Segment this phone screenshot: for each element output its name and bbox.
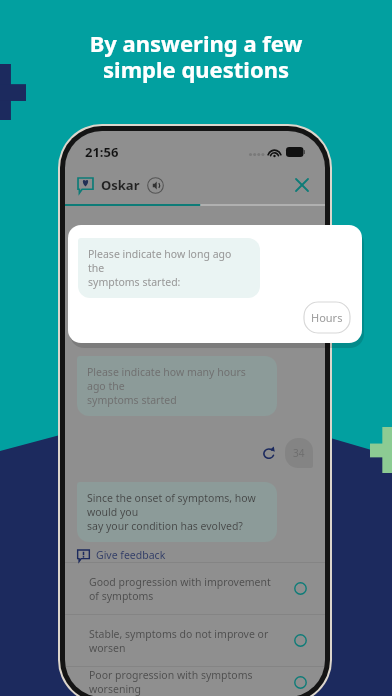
staticText: Since the onset of symptoms, how would y… bbox=[87, 491, 267, 533]
button[interactable]: Close bbox=[291, 174, 313, 196]
staticText: Give feedback bbox=[96, 548, 166, 562]
staticText: Oskar bbox=[101, 176, 140, 194]
button[interactable]: Give feedback bbox=[77, 548, 166, 562]
button[interactable]: Hours bbox=[303, 301, 351, 334]
staticText: 34 bbox=[293, 446, 305, 460]
staticText: Good progression with improvement of sym… bbox=[89, 575, 294, 603]
staticText: Hours bbox=[311, 310, 343, 325]
button[interactable]: Poor progression with symptoms worsening bbox=[65, 667, 325, 696]
button[interactable] bbox=[251, 228, 313, 258]
staticText: Poor progression with symptoms worsening bbox=[89, 668, 294, 696]
button[interactable]: Good progression with improvement of sym… bbox=[65, 563, 325, 614]
button[interactable]: 34 bbox=[285, 438, 313, 468]
staticText: Please indicate how long ago the symptom… bbox=[88, 247, 250, 289]
button[interactable]: Edit answer bbox=[261, 445, 277, 461]
button[interactable]: Oskar assistant bbox=[77, 177, 94, 194]
button[interactable]: Toggle sound bbox=[147, 177, 164, 194]
staticText: By answering a few simple questions bbox=[0, 28, 392, 85]
staticText: 21:56 bbox=[85, 143, 119, 161]
button[interactable]: Stable, symptoms do not improve or worse… bbox=[65, 615, 325, 666]
staticText: Stable, symptoms do not improve or worse… bbox=[89, 627, 294, 655]
staticText: Please indicate how many hours ago the s… bbox=[87, 365, 267, 407]
